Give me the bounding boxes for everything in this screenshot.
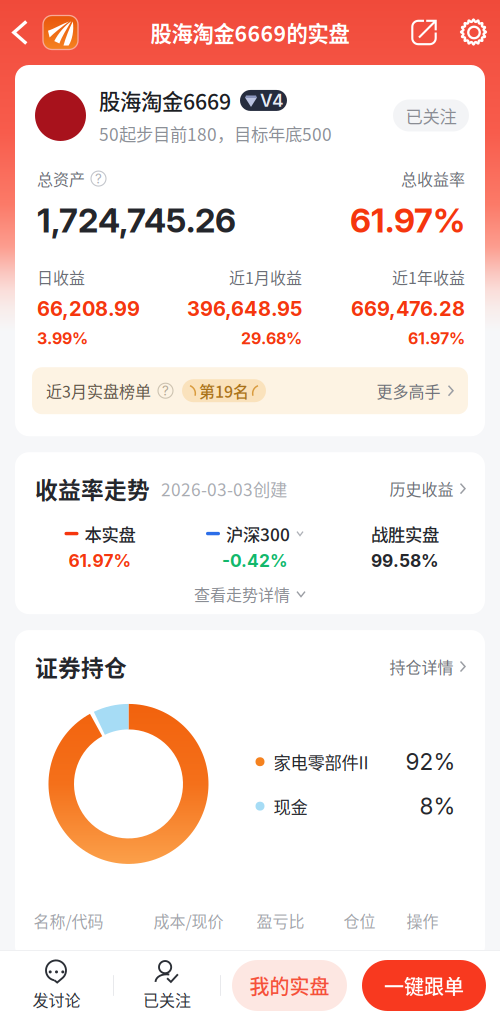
- staticText: 本实盘: [84, 521, 135, 546]
- staticText: 29.68%: [241, 329, 302, 348]
- staticText: 成本/现价: [153, 909, 223, 932]
- staticText: 近1月收益: [229, 265, 302, 289]
- button[interactable]: Settings: [448, 0, 500, 65]
- staticText: 仓位: [343, 909, 375, 932]
- staticText: V4: [260, 90, 284, 111]
- staticText: 396,648.95: [187, 297, 302, 321]
- staticText: 股海淘金6669: [99, 85, 231, 116]
- staticText: 操作: [406, 909, 438, 932]
- button[interactable]: 发讨论: [0, 950, 113, 1020]
- staticText: 已关注: [405, 103, 456, 128]
- staticText: 一键跟单: [384, 971, 464, 1000]
- staticText: 持仓详情: [389, 655, 453, 678]
- staticText: 61.97%: [350, 200, 465, 240]
- staticText: 669,476.28: [351, 297, 465, 321]
- staticText: 股海淘金6669的实盘: [150, 17, 349, 48]
- staticText: 现金: [273, 794, 307, 819]
- staticText: 总收益率: [401, 167, 465, 190]
- staticText: 更多高手: [376, 379, 440, 402]
- staticText: 61.97%: [68, 550, 131, 571]
- button[interactable]: 近3月实盘榜单: [32, 367, 468, 414]
- staticText: 近3月实盘榜单: [46, 379, 151, 402]
- staticText: 查看走势详情: [194, 582, 290, 606]
- staticText: 发讨论: [32, 988, 80, 1011]
- staticText: 名称/代码: [33, 909, 103, 932]
- staticText: 近1年收益: [392, 265, 465, 289]
- button[interactable]: 已关注: [393, 99, 469, 131]
- staticText: 收益率走势: [35, 472, 150, 505]
- staticText: 总资产: [37, 167, 85, 190]
- button[interactable]: Back: [0, 0, 40, 65]
- button[interactable]: Share: [400, 0, 448, 65]
- staticText: 99.58%: [371, 550, 439, 571]
- staticText: 第19名: [199, 379, 249, 402]
- staticText: 61.97%: [408, 329, 465, 348]
- staticText: ?: [95, 170, 102, 187]
- staticText: 66,208.99: [37, 297, 140, 321]
- staticText: 8%: [419, 792, 455, 820]
- staticText: 家电零部件II: [273, 749, 368, 774]
- staticText: 1,724,745.26: [37, 200, 236, 240]
- staticText: 3.99%: [37, 329, 88, 348]
- staticText: 沪深300: [226, 521, 290, 546]
- staticText: 日收益: [37, 265, 85, 289]
- staticText: 证券持仓: [35, 650, 127, 683]
- staticText: 2026-03-03创建: [161, 476, 287, 501]
- button[interactable]: 我的实盘: [232, 960, 347, 1011]
- staticText: 历史收益: [389, 477, 453, 500]
- staticText: 我的实盘: [249, 971, 329, 1000]
- button[interactable]: 一键跟单: [362, 960, 486, 1011]
- staticText: 50起步目前180，目标年底500: [99, 121, 332, 146]
- button[interactable]: 持仓详情: [389, 655, 467, 678]
- staticText: ?: [162, 383, 169, 399]
- staticText: 盈亏比: [256, 909, 304, 932]
- button[interactable]: 历史收益: [389, 477, 467, 500]
- button[interactable]: 查看走势详情: [150, 581, 350, 607]
- staticText: 战胜实盘: [371, 521, 439, 546]
- staticText: 已关注: [143, 988, 191, 1011]
- staticText: 92%: [405, 748, 455, 775]
- staticText: -0.42%: [222, 550, 288, 571]
- button[interactable]: 已关注: [114, 950, 220, 1020]
